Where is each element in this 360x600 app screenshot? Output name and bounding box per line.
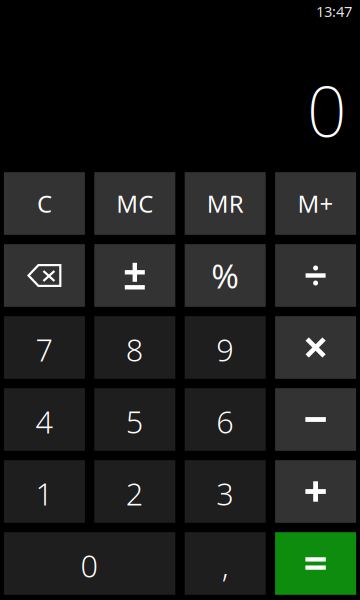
staticText: MC	[116, 188, 153, 219]
button[interactable]: Multiply	[275, 316, 356, 379]
staticText: 6	[216, 401, 234, 442]
button[interactable]: Memory add	[275, 172, 356, 235]
button[interactable]: 2	[94, 460, 175, 523]
button[interactable]: 9	[185, 316, 266, 379]
staticText: 1	[35, 473, 53, 514]
button[interactable]: Decimal separator	[185, 532, 266, 595]
staticText: %	[211, 253, 239, 298]
button[interactable]: Percent	[185, 244, 266, 307]
staticText: 9	[216, 329, 234, 370]
button[interactable]: Equals	[275, 532, 356, 595]
button[interactable]: Plus	[275, 460, 356, 523]
button[interactable]: Clear	[4, 172, 85, 235]
button[interactable]: 1	[4, 460, 85, 523]
button[interactable]: Plus minus	[94, 244, 175, 307]
button[interactable]: 3	[185, 460, 266, 523]
button[interactable]: 5	[94, 388, 175, 451]
button[interactable]: 6	[185, 388, 266, 451]
staticText: 0	[81, 545, 99, 586]
button[interactable]: Minus	[275, 388, 356, 451]
staticText: 7	[35, 329, 53, 370]
staticText: 5	[126, 401, 144, 442]
staticText: C	[37, 188, 52, 219]
staticText: ,	[222, 545, 229, 586]
button[interactable]: Memory recall	[185, 172, 266, 235]
staticText: 13:47	[316, 1, 352, 21]
staticText: 4	[35, 401, 53, 442]
button[interactable]: Backspace	[4, 244, 85, 307]
staticText: 3	[216, 473, 234, 514]
staticText: 0	[307, 64, 347, 156]
button[interactable]: Memory clear	[94, 172, 175, 235]
staticText: M+	[298, 188, 334, 219]
staticText: 2	[126, 473, 144, 514]
staticText: 8	[126, 329, 144, 370]
button[interactable]: 7	[4, 316, 85, 379]
button[interactable]: Divide	[275, 244, 356, 307]
staticText: MR	[207, 188, 244, 219]
button[interactable]: 4	[4, 388, 85, 451]
button[interactable]: 0	[4, 532, 175, 595]
button[interactable]: 8	[94, 316, 175, 379]
